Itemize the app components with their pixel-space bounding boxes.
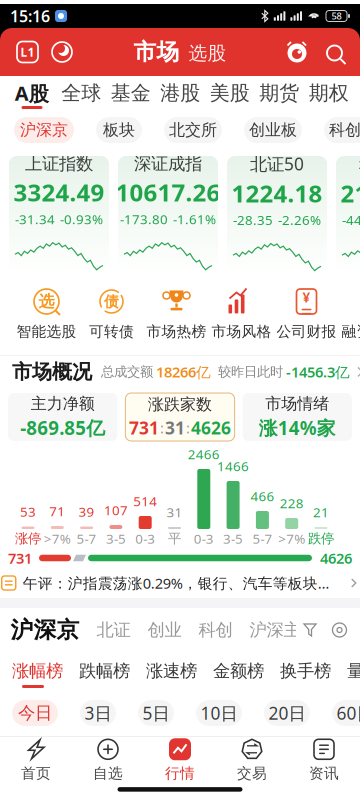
staticText: -2.26% bbox=[278, 211, 321, 229]
button[interactable]: 市场风格 bbox=[209, 285, 274, 340]
button[interactable]: 换手榜 bbox=[280, 660, 331, 682]
button[interactable]: 今日 bbox=[12, 700, 58, 726]
button[interactable]: 深证成指 bbox=[118, 156, 218, 272]
button[interactable]: 涨跌家数 bbox=[125, 393, 235, 441]
staticText: 美股 bbox=[210, 81, 250, 105]
button[interactable]: 涨速榜 bbox=[146, 660, 197, 682]
button[interactable]: 科创板 bbox=[324, 117, 360, 143]
staticText: 731 bbox=[129, 416, 159, 439]
button[interactable]: 创业板 bbox=[244, 117, 302, 143]
button[interactable]: 北交所 bbox=[164, 117, 222, 143]
button[interactable]: 跌幅榜 bbox=[79, 660, 130, 682]
staticText: 创业板 bbox=[249, 120, 297, 140]
staticText: 5-7 bbox=[252, 530, 272, 547]
button[interactable]: 行情 bbox=[144, 737, 216, 783]
button[interactable]: 期货 bbox=[255, 81, 303, 105]
staticText: 2113.31 bbox=[340, 177, 360, 209]
staticText: L1 bbox=[20, 44, 34, 60]
button[interactable]: 市场 bbox=[133, 38, 179, 66]
staticText: 平 bbox=[168, 530, 181, 547]
staticText: 全球 bbox=[61, 81, 101, 105]
staticText: >7% bbox=[278, 530, 305, 547]
button[interactable]: L1 bbox=[17, 41, 38, 62]
button[interactable]: 沪深京 bbox=[14, 117, 74, 143]
staticText: >7% bbox=[44, 530, 71, 547]
button[interactable]: 量比榜 bbox=[347, 660, 360, 682]
button[interactable]: 北证50 bbox=[227, 156, 327, 272]
staticText: 514 bbox=[133, 492, 157, 510]
staticText: 深证成指 bbox=[134, 153, 202, 174]
button[interactable] bbox=[323, 41, 344, 62]
button[interactable]: 市场热榜 bbox=[144, 285, 209, 340]
staticText: -173.80 bbox=[120, 210, 168, 228]
staticText: 上证指数 bbox=[25, 153, 93, 174]
staticText: : bbox=[160, 418, 164, 438]
staticText: 5日 bbox=[142, 701, 169, 724]
staticText: 科创50 bbox=[359, 152, 360, 175]
staticText: 市场热榜 bbox=[146, 322, 206, 340]
button[interactable]: 5日 bbox=[138, 700, 174, 726]
staticText: 市场 bbox=[133, 38, 179, 66]
button[interactable]: 10日 bbox=[196, 700, 242, 726]
staticText: 北交所 bbox=[169, 120, 217, 140]
button[interactable]: 自选 bbox=[72, 737, 144, 783]
staticText: 0-3 bbox=[135, 530, 155, 547]
button[interactable]: 涨幅榜 bbox=[12, 660, 63, 682]
staticText: 4626 bbox=[320, 548, 352, 568]
staticText: 板块 bbox=[103, 120, 135, 140]
staticText: 北证50 bbox=[250, 152, 304, 175]
staticText: 交易 bbox=[237, 764, 267, 782]
staticText: 市场风格 bbox=[211, 322, 271, 340]
staticText: 总成交额 bbox=[101, 364, 153, 380]
button[interactable]: 金额榜 bbox=[213, 660, 264, 682]
button[interactable]: ¥ bbox=[339, 285, 360, 340]
button[interactable]: 选 bbox=[14, 285, 79, 340]
staticText: 今日 bbox=[18, 702, 52, 724]
staticText: 53 bbox=[20, 503, 36, 520]
staticText: 10日 bbox=[200, 701, 237, 724]
staticText: 228 bbox=[280, 494, 304, 512]
button[interactable]: 债 bbox=[79, 285, 144, 340]
button[interactable]: 期权 bbox=[305, 81, 352, 105]
button[interactable]: 午评：沪指震荡涨0.29%，银行、汽车等板块… bbox=[0, 568, 360, 598]
button[interactable]: 上证指数 bbox=[9, 156, 109, 272]
staticText: 科创板 bbox=[329, 120, 360, 140]
staticText: 3-5 bbox=[106, 530, 126, 547]
button[interactable]: 市场情绪 bbox=[243, 393, 352, 441]
staticText: 沪深京 bbox=[10, 616, 79, 644]
staticText: 20日 bbox=[268, 701, 305, 724]
button[interactable]: 60日 bbox=[332, 700, 360, 726]
button[interactable]: 基金 bbox=[107, 81, 154, 105]
staticText: 资讯 bbox=[309, 764, 339, 782]
button[interactable]: 美股 bbox=[206, 81, 253, 105]
button[interactable]: 20日 bbox=[264, 700, 310, 726]
button[interactable]: 港股 bbox=[156, 81, 204, 105]
staticText: 午评：沪指震荡涨0.29%，银行、汽车等板块… bbox=[23, 573, 330, 593]
button[interactable]: 首页 bbox=[0, 737, 72, 783]
staticText: ¥ bbox=[302, 288, 310, 306]
button[interactable]: 科创50 bbox=[336, 156, 360, 272]
staticText: 15:16 bbox=[10, 5, 50, 27]
staticText: -31.34 bbox=[15, 210, 55, 228]
staticText: 港股 bbox=[160, 81, 200, 105]
staticText: 涨14%家 bbox=[259, 415, 336, 440]
button[interactable]: 主力净额 bbox=[8, 393, 117, 441]
button[interactable]: ¥ bbox=[274, 285, 339, 340]
button[interactable] bbox=[285, 40, 309, 64]
button[interactable]: 交易 bbox=[216, 737, 288, 783]
staticText: 3324.49 bbox=[13, 176, 104, 208]
staticText: 39 bbox=[79, 503, 95, 520]
staticText: 北证 bbox=[96, 619, 130, 641]
button[interactable] bbox=[52, 42, 72, 62]
staticText: 基金 bbox=[111, 81, 151, 105]
button[interactable]: A股 bbox=[8, 80, 55, 106]
button[interactable]: 资讯 bbox=[288, 737, 360, 783]
staticText: 融资融券 bbox=[341, 322, 360, 340]
button[interactable]: 全球 bbox=[57, 81, 105, 105]
button[interactable]: 3日 bbox=[80, 700, 116, 726]
staticText: 18266亿 bbox=[156, 362, 211, 382]
button[interactable]: 板块 bbox=[96, 117, 142, 143]
button[interactable]: 选股 bbox=[188, 42, 226, 65]
staticText: 3-5 bbox=[223, 530, 243, 547]
staticText: 首页 bbox=[21, 764, 51, 782]
